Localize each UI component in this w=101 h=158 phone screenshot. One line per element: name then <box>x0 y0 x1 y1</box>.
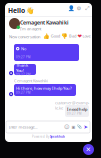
button[interactable]: Settings <box>76 5 82 12</box>
button[interactable]: Send <box>83 124 87 130</box>
button[interactable]: Close chat <box>83 144 94 155</box>
staticText: 👎 <box>61 33 68 39</box>
staticText: Hello <box>8 6 25 15</box>
button[interactable]: Attach file <box>77 125 82 129</box>
staticText: ⤢ <box>85 6 89 11</box>
staticText: 📎 <box>77 125 82 129</box>
staticText: 09:27 PM <box>16 73 30 76</box>
staticText: 👍 <box>43 33 50 39</box>
button[interactable]: 👍 <box>43 33 60 39</box>
staticText: I need help <box>67 107 87 112</box>
staticText: ▣ <box>71 125 75 129</box>
staticText: ❤ <box>78 33 82 39</box>
button[interactable]: Expand <box>84 5 90 12</box>
button[interactable]: ❤ <box>78 33 90 39</box>
staticText: 09:27 PM <box>16 91 30 94</box>
staticText: Hi there, how may I help You? <box>16 86 72 91</box>
staticText: New conversation <box>9 34 40 39</box>
staticText: Thank You! <box>16 62 28 73</box>
staticText: 09:27 PM <box>16 55 30 59</box>
button[interactable]: Agent profile <box>68 5 74 12</box>
staticText: Speakhub <box>50 135 65 138</box>
staticText: ➤ <box>83 124 87 130</box>
button[interactable]: 👎 <box>61 33 76 39</box>
staticText: ☺ <box>64 124 70 130</box>
staticText: Enter message... <box>8 124 37 130</box>
staticText: I'm an agent <box>20 26 41 31</box>
staticText: Powered By <box>32 135 50 138</box>
staticText: 👤 <box>67 5 74 12</box>
staticText: ✕ <box>85 146 91 153</box>
button[interactable]: Image <box>71 125 75 129</box>
staticText: ⚙ <box>76 5 81 12</box>
staticText: Bad <box>69 33 76 39</box>
staticText: Cemagent Kawahiki <box>20 19 69 26</box>
staticText: customer@example.ke <box>55 100 89 111</box>
staticText: 09:27 PM <box>67 112 81 115</box>
button[interactable]: Emoji <box>64 124 70 130</box>
staticText: No <box>21 46 26 51</box>
staticText: Love <box>82 33 90 39</box>
staticText: 👋 <box>26 7 34 14</box>
staticText: Cemagent Kawahiki <box>14 78 48 83</box>
staticText: Good <box>51 33 60 39</box>
